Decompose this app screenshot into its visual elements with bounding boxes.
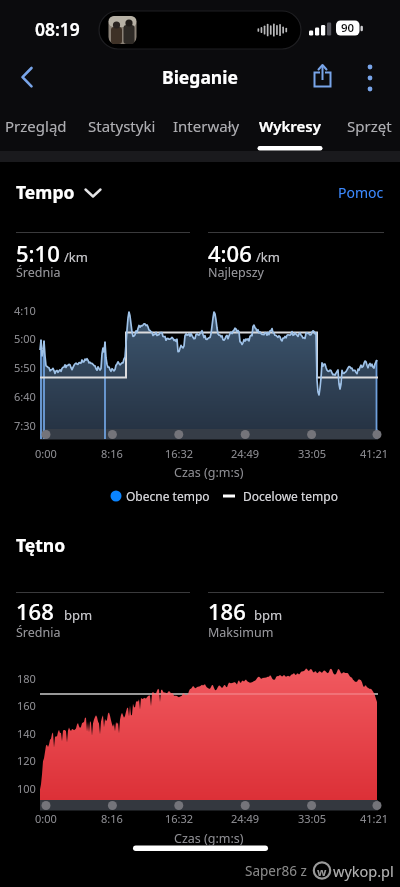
staticText: 16:32 (165, 811, 194, 826)
staticText: Pomoc (338, 183, 384, 202)
staticText: bpm (254, 606, 283, 624)
staticText: Przegląd (5, 116, 67, 136)
button[interactable] (86, 104, 158, 152)
staticText: 33:05 (298, 446, 327, 461)
staticText: 4:10 (14, 303, 36, 318)
staticText: Najlepszy (208, 264, 264, 281)
staticText: 0:00 (35, 811, 57, 826)
button[interactable] (340, 104, 398, 152)
button[interactable] (340, 176, 392, 208)
staticText: 0:00 (35, 446, 57, 461)
staticText: /km (64, 248, 88, 266)
staticText: 41:21 (360, 811, 389, 826)
staticText: 8:16 (101, 811, 123, 826)
staticText: 100 (17, 781, 36, 796)
staticText: 7:30 (14, 418, 36, 433)
button[interactable] (256, 104, 324, 152)
staticText: bpm (64, 606, 93, 624)
staticText: w (317, 864, 327, 879)
staticText: wykop.pl (333, 861, 394, 881)
staticText: /km (256, 248, 280, 266)
staticText: Średnia (16, 624, 61, 641)
button[interactable] (8, 58, 48, 96)
button[interactable] (304, 58, 344, 96)
staticText: 160 (17, 698, 36, 713)
staticText: Tętno (16, 533, 66, 557)
button[interactable] (4, 104, 68, 152)
staticText: Czas (g:m:s) (174, 464, 244, 481)
staticText: 16:32 (165, 446, 194, 461)
staticText: 4:06 (208, 238, 252, 268)
staticText: 41:21 (360, 446, 389, 461)
staticText: Wykresy (259, 116, 321, 136)
staticText: 186 (208, 596, 246, 626)
staticText: 8:16 (101, 446, 123, 461)
staticText: 33:05 (298, 811, 327, 826)
staticText: 24:49 (231, 811, 260, 826)
staticText: Tempo (16, 180, 75, 204)
staticText: 168 (16, 596, 54, 626)
staticText: 6:40 (14, 389, 36, 404)
staticText: 5:10 (16, 238, 60, 268)
staticText: Interwały (173, 116, 240, 136)
staticText: 90 (341, 20, 355, 36)
button[interactable] (172, 104, 240, 152)
staticText: 24:49 (231, 446, 260, 461)
staticText: 08:19 (35, 17, 80, 41)
staticText: Docelowe tempo (243, 488, 338, 504)
button[interactable] (352, 58, 388, 96)
staticText: Obecne tempo (126, 488, 210, 504)
button[interactable] (12, 174, 104, 210)
staticText: 120 (17, 753, 36, 768)
staticText: Saper86 z (245, 862, 307, 880)
staticText: Maksimum (208, 624, 274, 641)
staticText: Sprzęt (347, 116, 392, 136)
staticText: 140 (17, 726, 36, 741)
staticText: Statystyki (88, 116, 156, 136)
staticText: Czas (g:m:s) (174, 830, 244, 847)
staticText: 5:00 (14, 331, 36, 346)
staticText: 180 (17, 671, 36, 686)
staticText: 5:50 (14, 360, 36, 375)
staticText: Bieganie (162, 65, 238, 89)
staticText: Średnia (16, 264, 61, 281)
